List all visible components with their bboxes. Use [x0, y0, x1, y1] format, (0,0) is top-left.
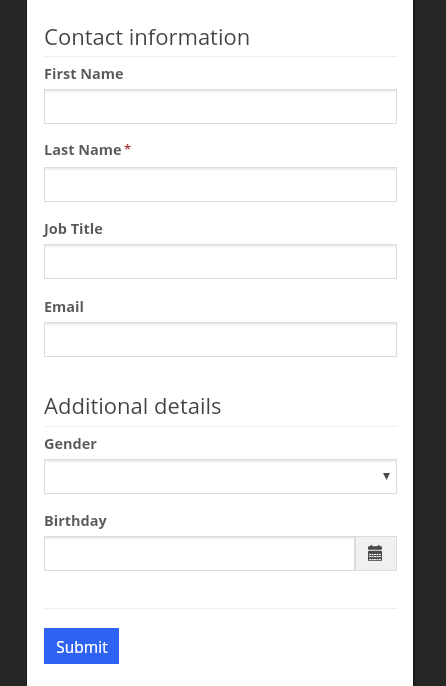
button[interactable]: Last Name, required: [44, 167, 397, 202]
staticText: *: [124, 140, 132, 158]
staticText: Gender: [44, 434, 97, 454]
button[interactable]: Birthday: [44, 536, 355, 571]
button[interactable]: First Name: [44, 89, 397, 124]
staticText: Last Name: [44, 140, 122, 160]
staticText: Additional details: [44, 390, 222, 420]
button[interactable]: Email: [44, 322, 397, 357]
button[interactable]: Job Title: [44, 244, 397, 279]
staticText: First Name: [44, 64, 124, 84]
staticText: Submit: [56, 636, 108, 657]
staticText: Email: [44, 297, 84, 317]
button[interactable]: Gender dropdown: [44, 459, 397, 494]
staticText: Birthday: [44, 511, 107, 531]
button[interactable]: Pick date: [355, 536, 397, 571]
staticText: Contact information: [44, 21, 251, 51]
button[interactable]: Submit: [44, 628, 119, 664]
staticText: Job Title: [44, 219, 103, 239]
